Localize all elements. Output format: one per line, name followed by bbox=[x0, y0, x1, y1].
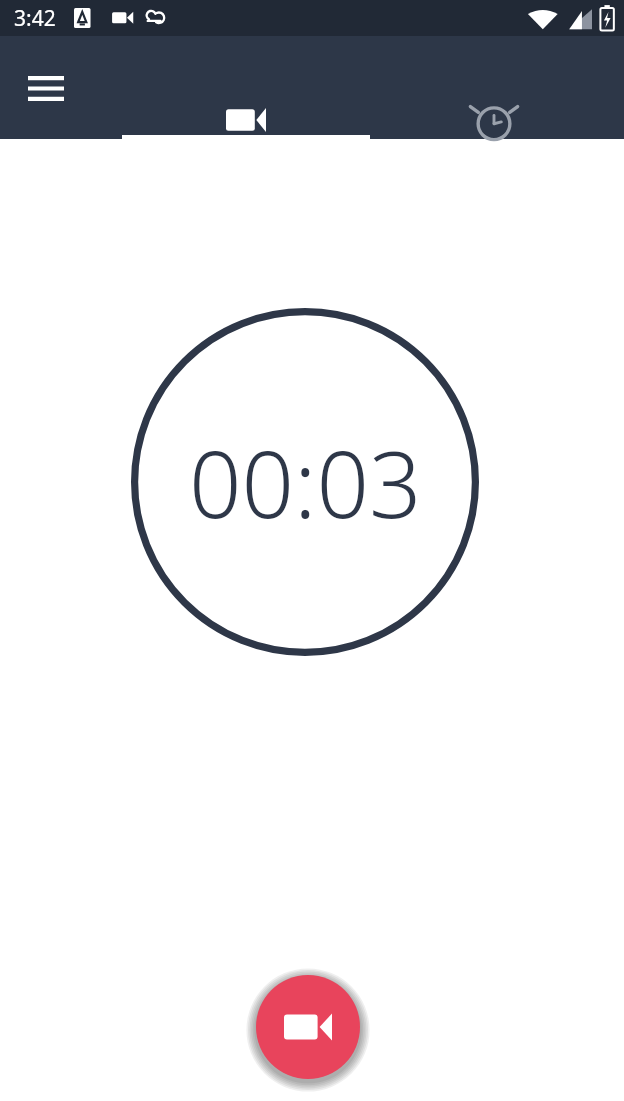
button[interactable]: Open navigation menu bbox=[10, 52, 82, 124]
button[interactable]: Alarm tab bbox=[370, 36, 624, 139]
staticText: 3:42 bbox=[14, 4, 56, 33]
staticText: 00:03 bbox=[189, 420, 422, 545]
button[interactable]: Start recording bbox=[256, 975, 360, 1079]
button[interactable]: Video recorder tab bbox=[122, 36, 370, 139]
